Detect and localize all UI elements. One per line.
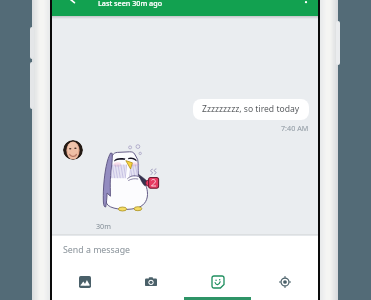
staticText: Send a message	[63, 244, 131, 256]
staticText: Zzzzzzzzz, so tired today	[202, 103, 300, 115]
button[interactable]: More options	[298, 0, 314, 5]
staticText: 30m	[96, 221, 111, 231]
button[interactable]: Zzzzzzzzz, so tired today	[193, 99, 309, 120]
button[interactable]: Camera	[118, 264, 184, 300]
staticText: Last seen 30m ago	[98, 0, 163, 8]
button[interactable]: Location	[251, 264, 318, 300]
button[interactable]: Gallery	[52, 264, 118, 300]
button[interactable]: Stickers	[184, 264, 251, 300]
staticText: 7:40 AM	[281, 123, 309, 133]
button[interactable]: Back	[61, 0, 81, 5]
